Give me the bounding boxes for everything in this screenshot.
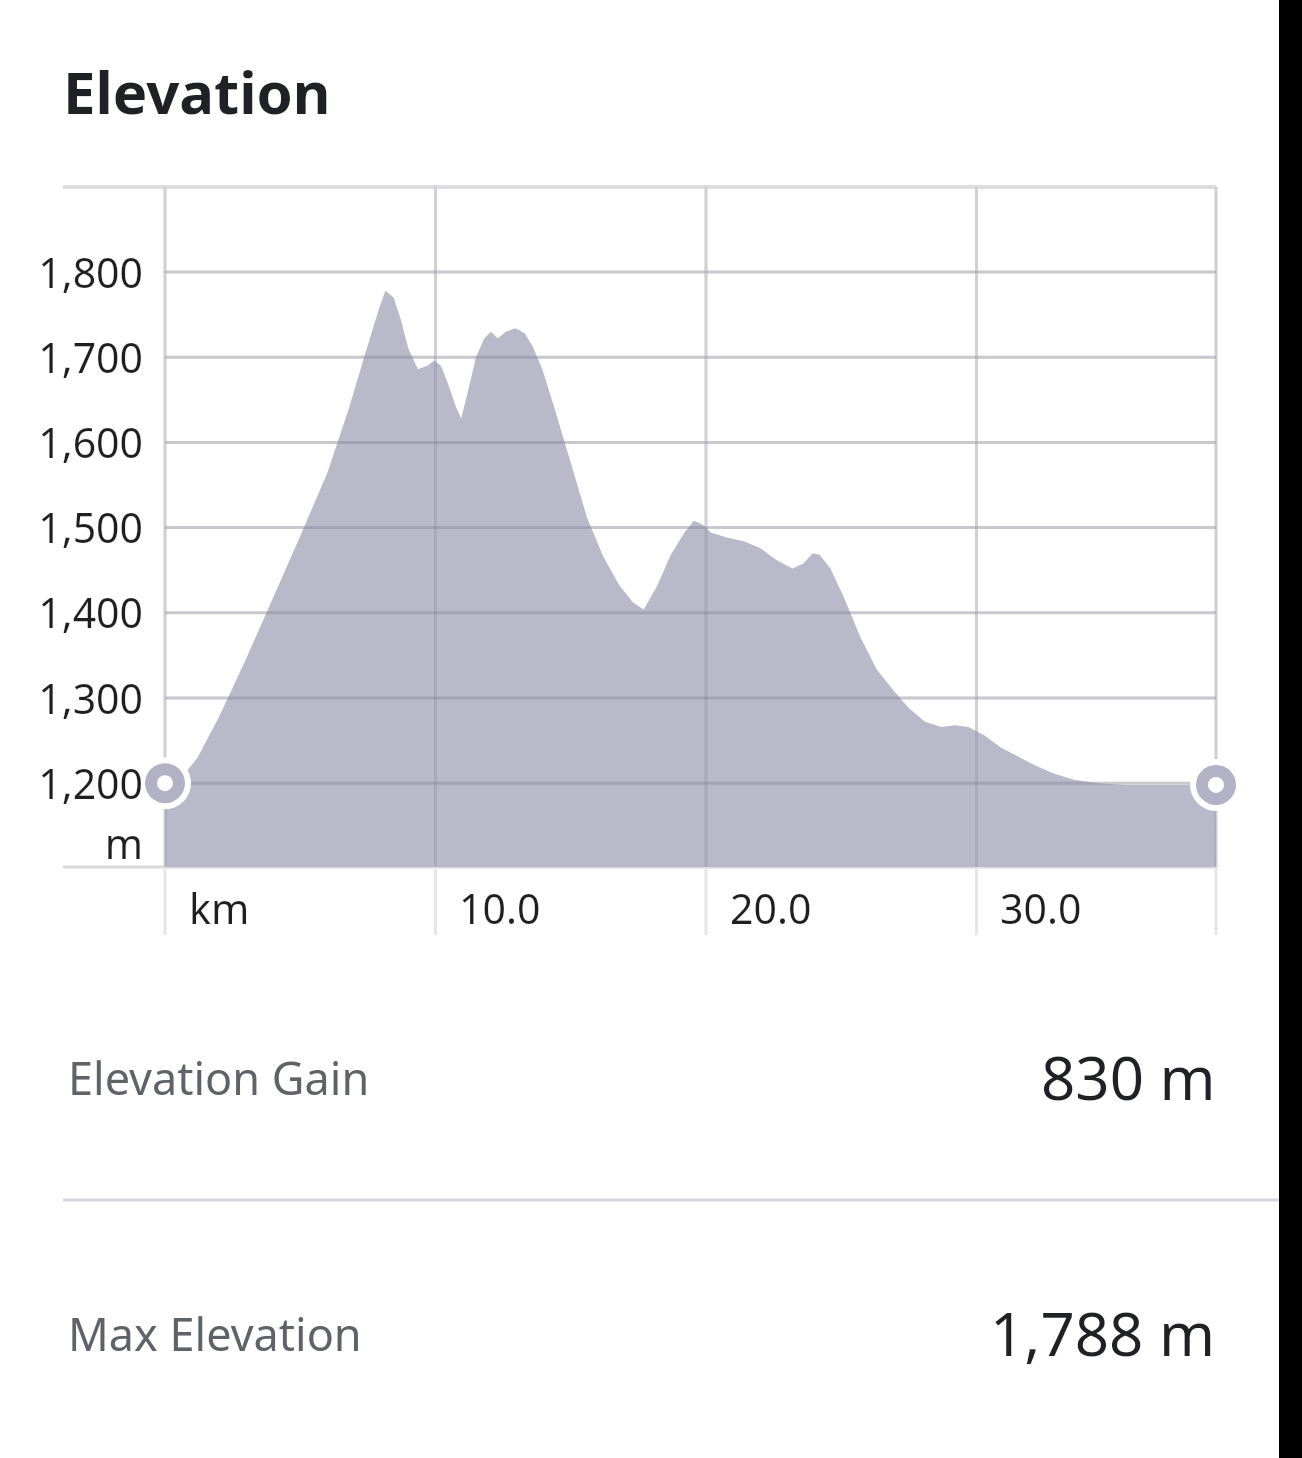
staticText: 1,400 <box>38 584 143 640</box>
staticText: 10.0 <box>459 880 541 936</box>
button[interactable]: Elevation Gain <box>68 1047 370 1108</box>
staticText: 1,300 <box>38 670 143 726</box>
button[interactable]: Max Elevation <box>68 1303 362 1364</box>
staticText: m <box>104 815 143 871</box>
staticText: Elevation <box>63 52 331 131</box>
staticText: 1,500 <box>38 499 143 555</box>
staticText: 830 m <box>1041 1036 1216 1118</box>
staticText: 1,700 <box>38 329 143 385</box>
staticText: 1,200 <box>38 755 143 811</box>
staticText: Max Elevation <box>68 1303 362 1364</box>
staticText: 20.0 <box>730 880 812 936</box>
staticText: 1,600 <box>38 414 143 470</box>
staticText: 1,800 <box>38 244 143 300</box>
staticText: 30.0 <box>1000 880 1082 936</box>
staticText: Elevation Gain <box>68 1047 370 1108</box>
staticText: 1,788 m <box>990 1292 1216 1374</box>
staticText: km <box>189 880 250 936</box>
